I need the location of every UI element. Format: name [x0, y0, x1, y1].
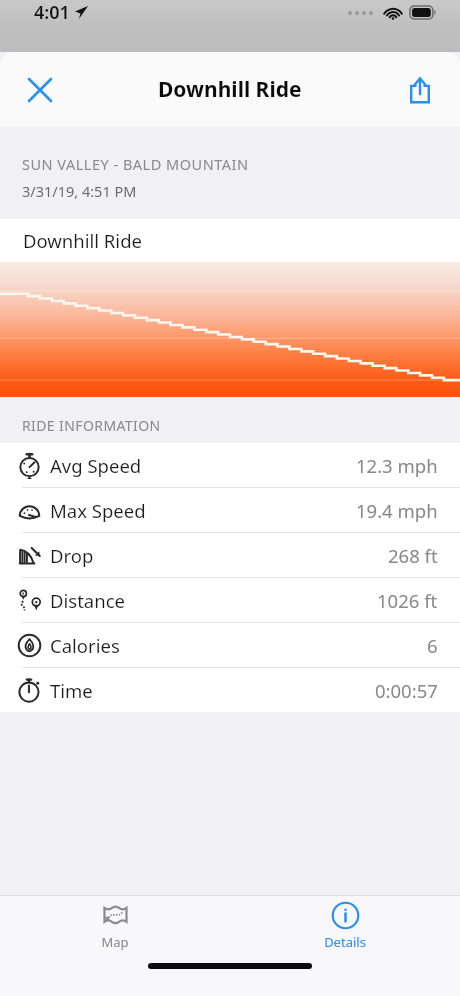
- button[interactable]: Calories: [0, 623, 460, 667]
- staticText: 4:01: [34, 0, 70, 25]
- staticText: RIDE INFORMATION: [22, 416, 161, 435]
- button[interactable]: Close: [14, 64, 66, 116]
- staticText: Distance: [50, 588, 125, 613]
- staticText: 3/31/19, 4:51 PM: [22, 181, 137, 201]
- staticText: Drop: [50, 543, 94, 568]
- staticText: Map: [101, 933, 129, 951]
- staticText: Details: [324, 933, 366, 951]
- button[interactable]: Avg Speed: [0, 443, 460, 487]
- staticText: Downhill Ride: [23, 228, 142, 253]
- staticText: 19.4 mph: [356, 498, 438, 523]
- staticText: 1026 ft: [377, 588, 438, 613]
- button[interactable]: Map: [0, 896, 230, 956]
- staticText: Max Speed: [50, 498, 146, 523]
- button[interactable]: Drop: [0, 533, 460, 577]
- button[interactable]: Details: [230, 896, 460, 956]
- staticText: 268 ft: [388, 543, 438, 568]
- staticText: Downhill Ride: [158, 75, 302, 104]
- button[interactable]: Max Speed: [0, 488, 460, 532]
- staticText: SUN VALLEY - BALD MOUNTAIN: [22, 154, 249, 174]
- staticText: Avg Speed: [50, 453, 142, 478]
- button[interactable]: Share: [394, 64, 446, 116]
- staticText: 6: [427, 633, 438, 658]
- staticText: Time: [50, 678, 93, 703]
- staticText: 12.3 mph: [356, 453, 438, 478]
- button[interactable]: Distance: [0, 578, 460, 622]
- staticText: Calories: [50, 633, 120, 658]
- staticText: 0:00:57: [375, 678, 438, 703]
- button[interactable]: Time: [0, 668, 460, 712]
- button[interactable]: Downhill Ride: [0, 219, 460, 262]
